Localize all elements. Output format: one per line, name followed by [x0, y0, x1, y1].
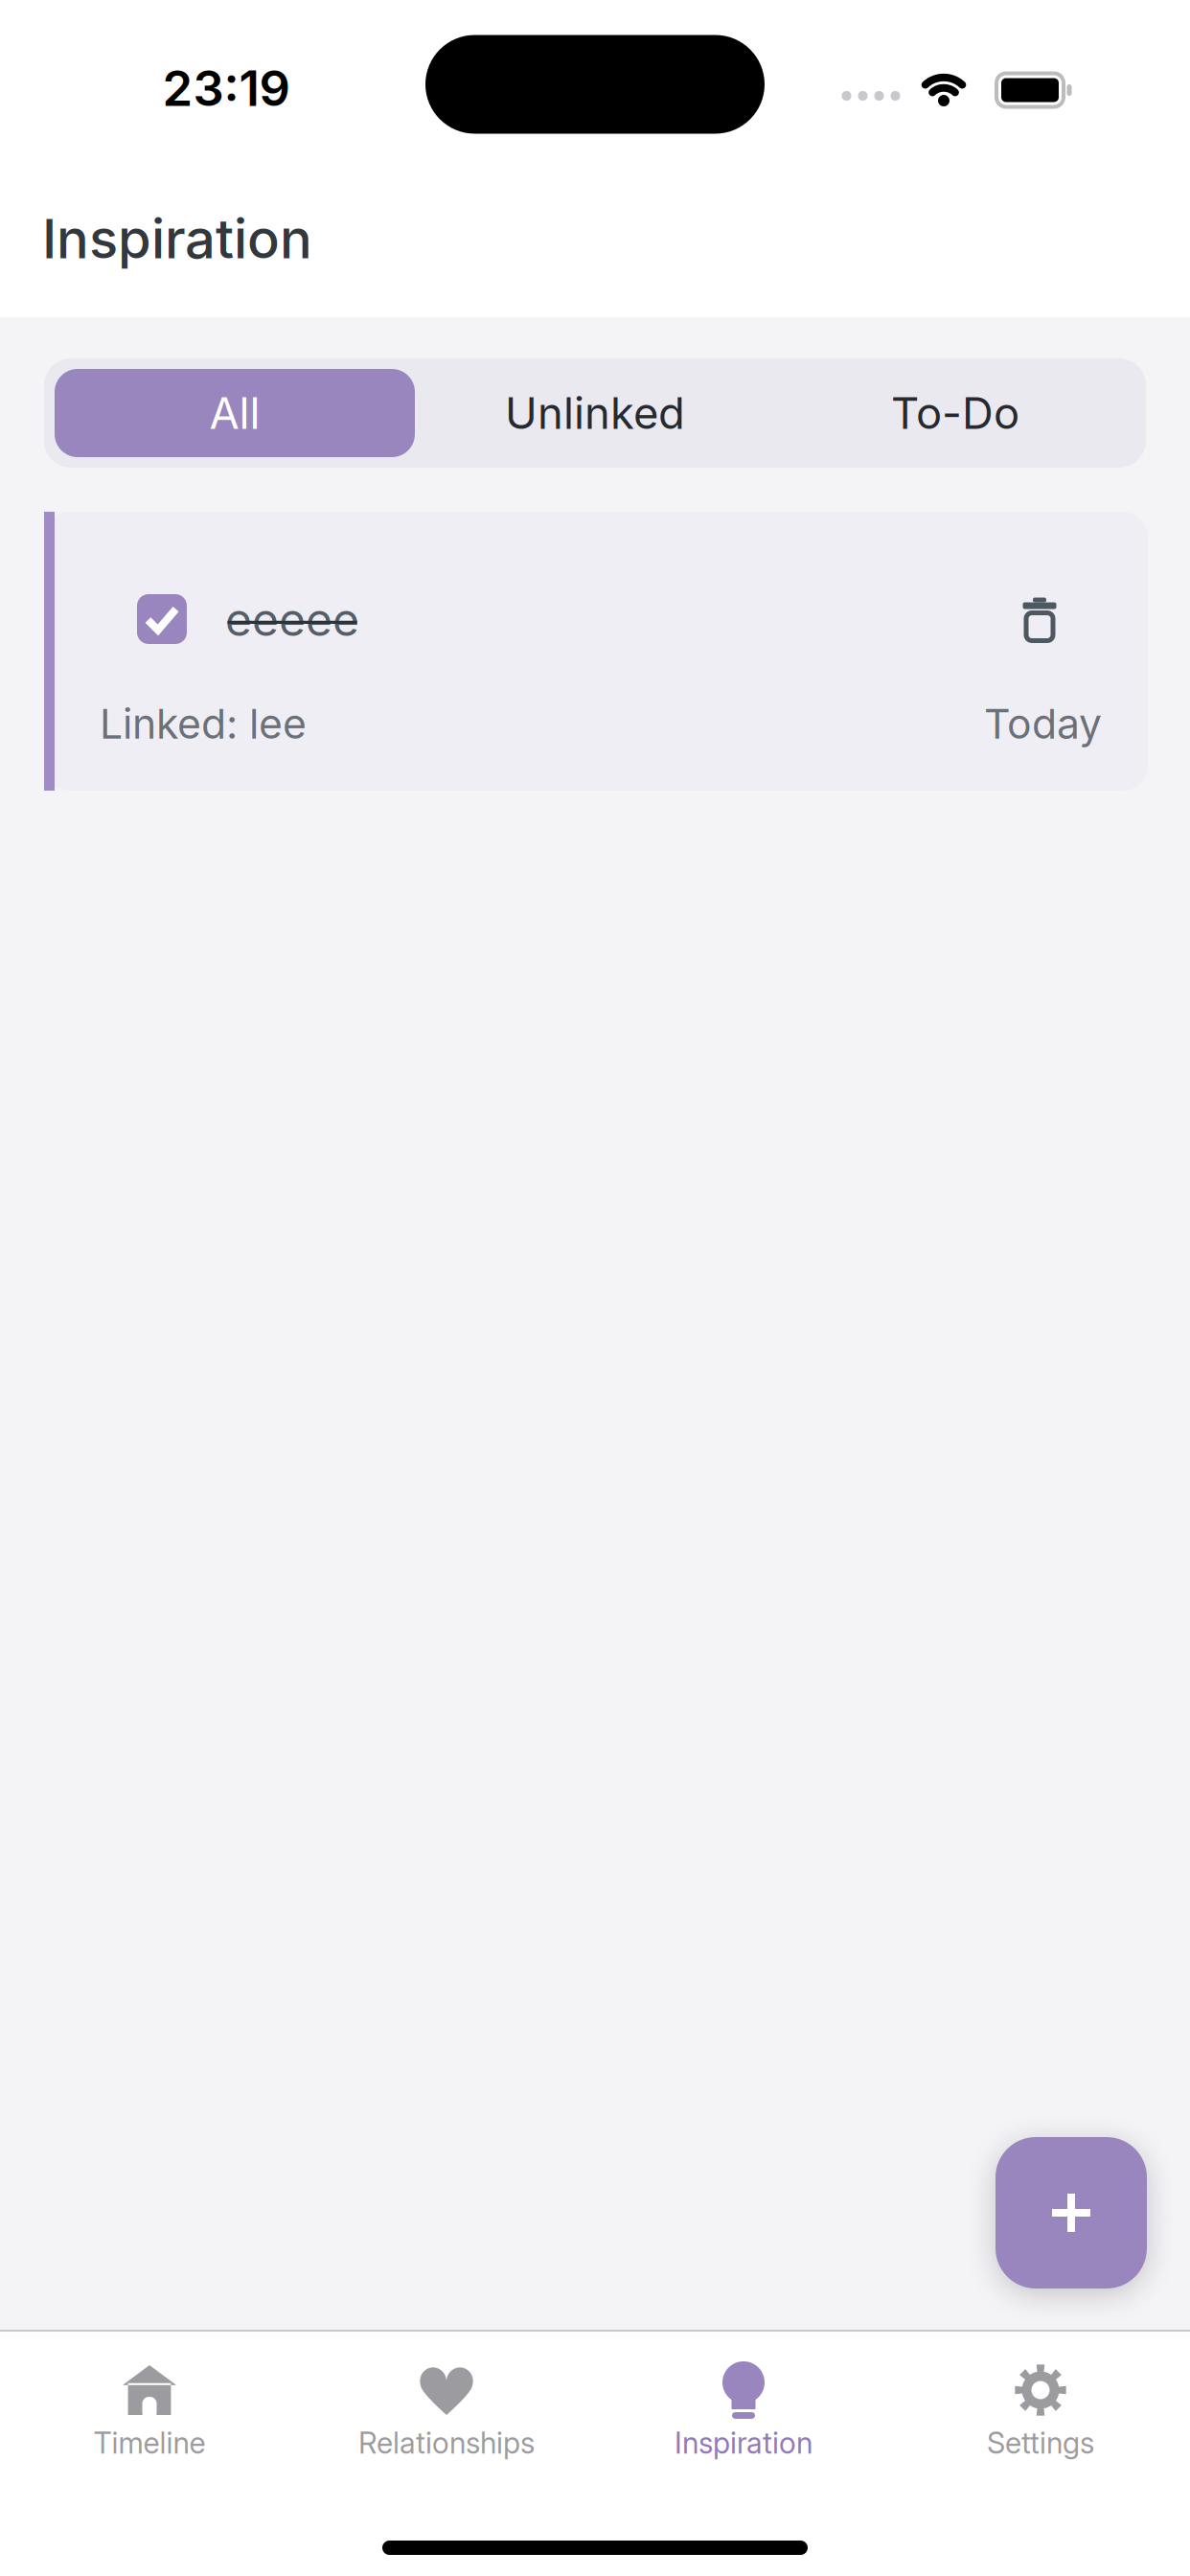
staticText: Unlinked: [505, 387, 685, 439]
button[interactable]: Add: [995, 2137, 1147, 2288]
button[interactable]: To-Do: [775, 369, 1135, 457]
button[interactable]: Settings: [892, 2363, 1189, 2460]
button[interactable]: Delete: [1020, 598, 1059, 640]
button[interactable]: Inspiration: [595, 2363, 892, 2460]
staticText: Today: [984, 700, 1102, 748]
staticText: eeeee: [225, 592, 359, 646]
button[interactable]: Unlinked: [415, 369, 775, 457]
staticText: Inspiration: [675, 2426, 812, 2460]
staticText: Settings: [987, 2426, 1094, 2460]
button[interactable]: Completed: [137, 594, 187, 644]
staticText: To-Do: [891, 387, 1019, 439]
button[interactable]: Timeline: [1, 2363, 298, 2460]
button[interactable]: Relationships: [298, 2363, 595, 2460]
staticText: Timeline: [93, 2426, 206, 2460]
staticText: 23:19: [162, 60, 290, 117]
staticText: Linked: lee: [100, 700, 307, 748]
staticText: All: [209, 387, 260, 439]
staticText: Inspiration: [42, 207, 312, 270]
staticText: Relationships: [358, 2426, 535, 2460]
button[interactable]: All: [55, 369, 415, 457]
